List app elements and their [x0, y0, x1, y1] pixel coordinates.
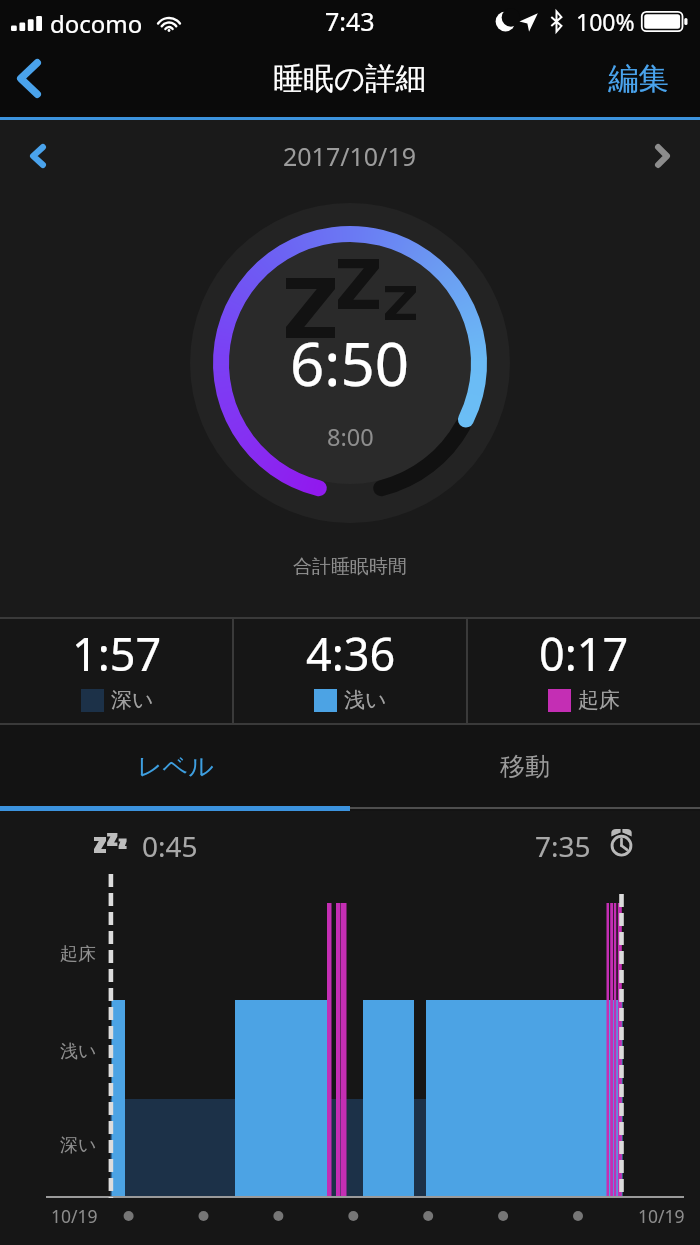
staticText: 移動 [500, 751, 550, 782]
staticText: 起床 [60, 943, 96, 966]
staticText: 深い [111, 687, 154, 713]
staticText: 8:00 [327, 421, 374, 453]
staticText: 浅い [344, 687, 387, 713]
button[interactable]: 4:36 [234, 617, 467, 725]
staticText: 2017/10/19 [283, 139, 417, 173]
button[interactable]: Previous day [0, 120, 76, 184]
other: Alarm [608, 827, 636, 859]
staticText: 浅い [60, 1040, 97, 1063]
staticText: 6:50 [290, 322, 410, 404]
staticText: 0:45 [142, 827, 198, 865]
staticText: 7:43 [325, 4, 375, 38]
button[interactable]: Back [0, 44, 62, 120]
button[interactable]: 1:57 [0, 617, 234, 725]
staticText: 10/19 [51, 1204, 98, 1228]
button[interactable]: レベル [0, 725, 350, 811]
button[interactable]: 編集 [586, 44, 700, 120]
staticText: 編集 [608, 60, 669, 98]
staticText: 7:35 [535, 827, 591, 865]
button[interactable]: 0:17 [467, 617, 700, 725]
staticText: 起床 [578, 687, 620, 713]
staticText: 合計睡眠時間 [293, 555, 407, 579]
staticText: 深い [60, 1134, 97, 1157]
staticText: 0:17 [539, 623, 629, 684]
button[interactable]: Next day [625, 120, 700, 184]
staticText: 4:36 [306, 623, 396, 684]
staticText: 100% [576, 6, 635, 37]
button[interactable]: 移動 [350, 725, 700, 811]
staticText: docomo [50, 7, 143, 40]
staticText: 1:57 [72, 623, 162, 684]
staticText: 10/19 [638, 1204, 685, 1228]
staticText: レベル [137, 751, 214, 782]
staticText: 睡眠の詳細 [273, 60, 427, 98]
